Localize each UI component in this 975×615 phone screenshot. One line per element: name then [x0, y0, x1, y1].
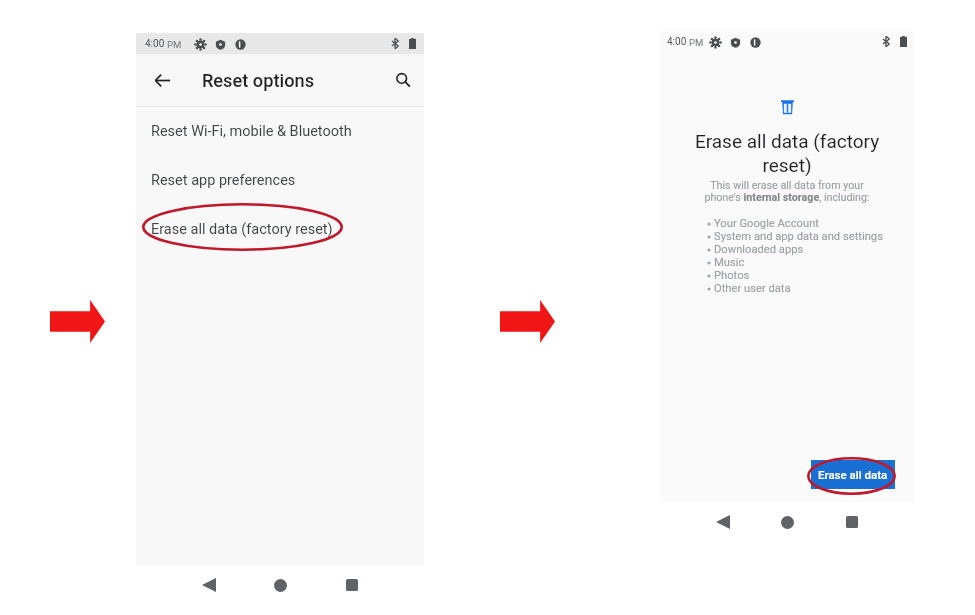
button[interactable]: Home [268, 573, 292, 597]
staticText: Erase all data (factory reset) [676, 130, 898, 177]
button[interactable]: Recents [340, 573, 364, 597]
button[interactable]: Back [711, 510, 735, 534]
staticText: Your Google Account [714, 217, 819, 230]
staticText: Reset options [202, 70, 315, 91]
button[interactable]: Back [197, 573, 221, 597]
staticText: 4:00 [667, 36, 687, 48]
button[interactable]: Erase all data [811, 460, 895, 489]
staticText: PM [689, 37, 704, 48]
button[interactable]: Recents [840, 510, 864, 534]
button[interactable]: Search [388, 65, 418, 95]
staticText: PM [167, 39, 182, 50]
staticText: Photos [714, 269, 750, 282]
staticText: This will erase all data from your phone… [676, 179, 898, 203]
button[interactable]: Back [145, 63, 179, 97]
staticText: Downloaded apps [714, 243, 804, 256]
staticText: Erase all data (factory reset) [151, 221, 333, 238]
button[interactable]: Reset Wi-Fi, mobile & Bluetooth [136, 107, 424, 156]
staticText: System and app data and settings [714, 230, 883, 243]
staticText: Music [714, 256, 745, 269]
staticText: Erase all data [818, 468, 888, 481]
staticText: Other user data [714, 282, 791, 295]
button[interactable]: Home [775, 510, 799, 534]
staticText: Reset app preferences [151, 172, 296, 189]
staticText: Reset Wi-Fi, mobile & Bluetooth [151, 123, 352, 140]
button[interactable]: Reset app preferences [136, 156, 424, 205]
staticText: 4:00 [145, 38, 165, 50]
button[interactable]: Erase all data (factory reset) [136, 205, 424, 254]
